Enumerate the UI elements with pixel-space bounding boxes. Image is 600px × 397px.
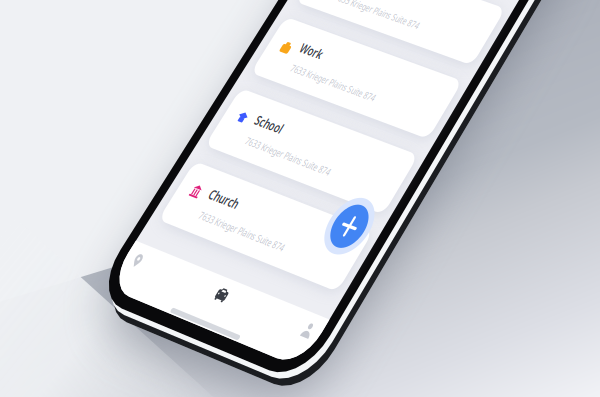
button[interactable]: Work <box>0 0 600 397</box>
button[interactable]: Church <box>0 0 600 397</box>
button[interactable]: School <box>0 0 600 397</box>
